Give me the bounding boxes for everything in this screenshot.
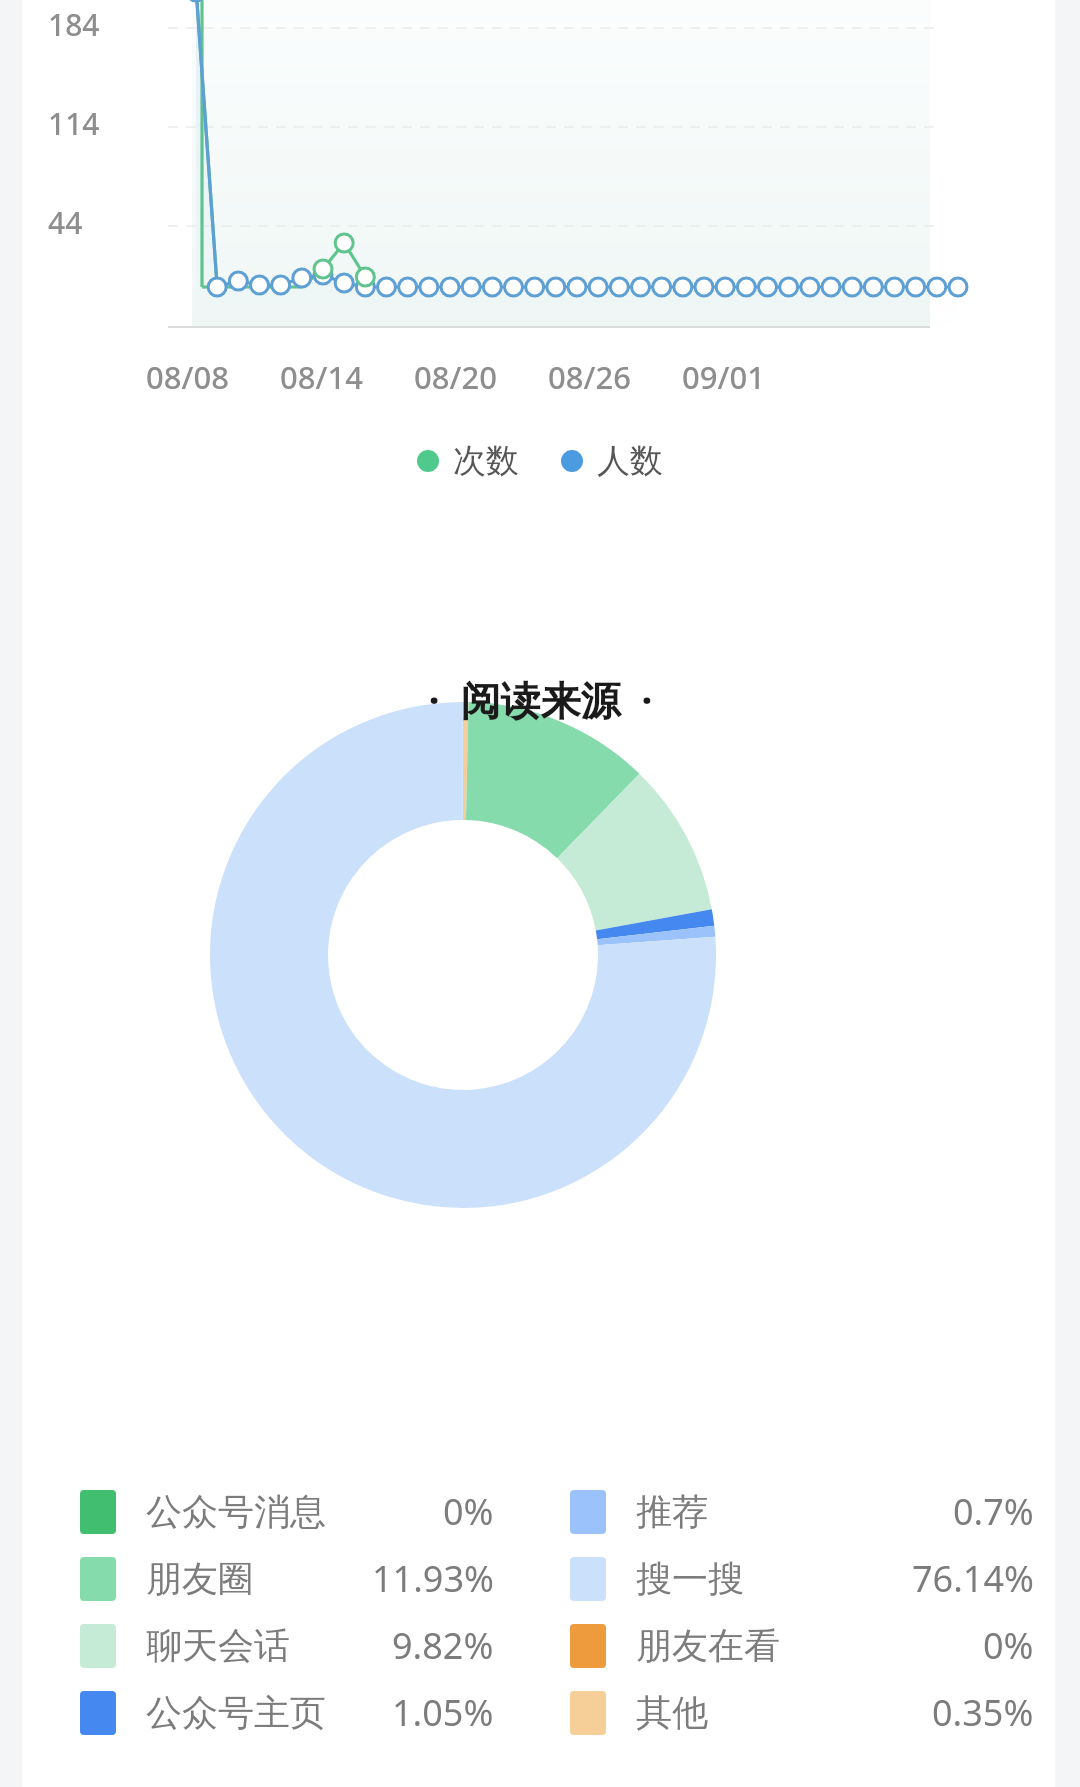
button[interactable]: 朋友在看 (570, 1612, 1080, 1679)
button[interactable]: 次数 (417, 440, 519, 482)
staticText: 44 (48, 202, 83, 243)
button[interactable]: 其他 (570, 1679, 1080, 1746)
button[interactable]: 人数 (561, 440, 663, 482)
staticText: 09/01 (682, 356, 765, 398)
staticText: 184 (48, 4, 100, 45)
staticText: 114 (48, 103, 100, 144)
staticText: 搜一搜 (636, 1556, 744, 1601)
staticText: 公众号主页 (146, 1690, 326, 1735)
button[interactable]: 搜一搜 (570, 1545, 1080, 1612)
staticText: 朋友在看 (636, 1623, 780, 1668)
staticText: 08/20 (414, 356, 497, 398)
staticText: 人数 (597, 440, 663, 482)
staticText: 聊天会话 (146, 1623, 290, 1668)
staticText: 08/14 (280, 356, 363, 398)
staticText: 公众号消息 (146, 1489, 326, 1534)
button[interactable]: 推荐 (570, 1478, 1080, 1545)
staticText: 08/08 (146, 356, 229, 398)
staticText: 次数 (453, 440, 519, 482)
staticText: 08/26 (548, 356, 631, 398)
button[interactable]: 公众号消息 (80, 1478, 540, 1545)
button[interactable]: 朋友圈 (80, 1545, 540, 1612)
staticText: · 阅读来源 · (428, 672, 653, 727)
staticText: 其他 (636, 1690, 708, 1735)
staticText: 9.82% (392, 1621, 494, 1670)
staticText: 0% (983, 1621, 1034, 1670)
staticText: 0% (443, 1487, 494, 1536)
button[interactable]: 公众号主页 (80, 1679, 540, 1746)
staticText: 朋友圈 (146, 1556, 254, 1601)
staticText: 76.14% (912, 1554, 1034, 1603)
staticText: 0.35% (932, 1688, 1034, 1737)
staticText: 1.05% (392, 1688, 494, 1737)
staticText: 推荐 (636, 1489, 708, 1534)
staticText: 0.7% (953, 1487, 1034, 1536)
button[interactable]: 聊天会话 (80, 1612, 540, 1679)
staticText: 11.93% (372, 1554, 494, 1603)
